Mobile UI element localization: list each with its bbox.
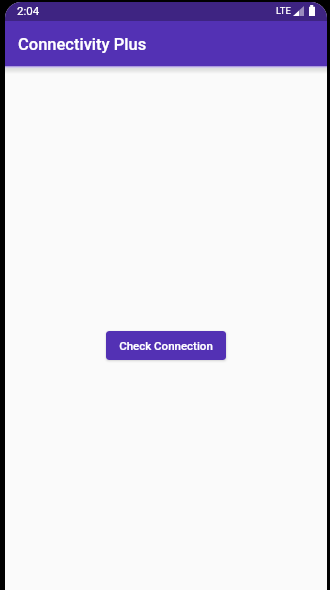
other: Mobile signal strength <box>293 6 304 16</box>
button[interactable]: Check Connection <box>106 331 226 360</box>
staticText: LTE <box>276 5 291 16</box>
staticText: 2:04 <box>17 4 40 17</box>
other: Battery full <box>309 5 315 16</box>
staticText: Check Connection <box>119 339 213 352</box>
staticText: Connectivity Plus <box>18 35 147 54</box>
